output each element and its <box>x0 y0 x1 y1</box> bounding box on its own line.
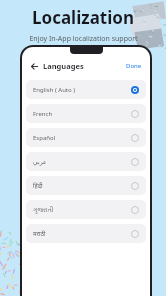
button[interactable]: मराठी <box>26 224 146 243</box>
button[interactable]: English ( Auto ) <box>26 80 146 99</box>
staticText: हिंदी <box>33 182 43 190</box>
button[interactable]: ગુજરાતી <box>26 200 146 219</box>
staticText: English ( Auto ) <box>33 86 76 94</box>
staticText: Localization <box>32 6 134 29</box>
button[interactable]: हिंदी <box>26 176 146 195</box>
staticText: मराठी <box>33 230 46 238</box>
staticText: عربي <box>33 158 47 165</box>
staticText: Languages <box>43 61 84 71</box>
button[interactable]: Done <box>124 60 144 72</box>
staticText: Done <box>126 62 142 70</box>
button[interactable]: Back <box>28 60 40 72</box>
button[interactable]: عربي <box>26 152 146 171</box>
staticText: ગુજરાતી <box>33 207 54 213</box>
staticText: Enjoy In-App localization support <box>29 34 138 44</box>
staticText: Español <box>33 134 56 142</box>
button[interactable]: French <box>26 104 146 123</box>
button[interactable]: Español <box>26 128 146 147</box>
staticText: French <box>33 110 53 118</box>
